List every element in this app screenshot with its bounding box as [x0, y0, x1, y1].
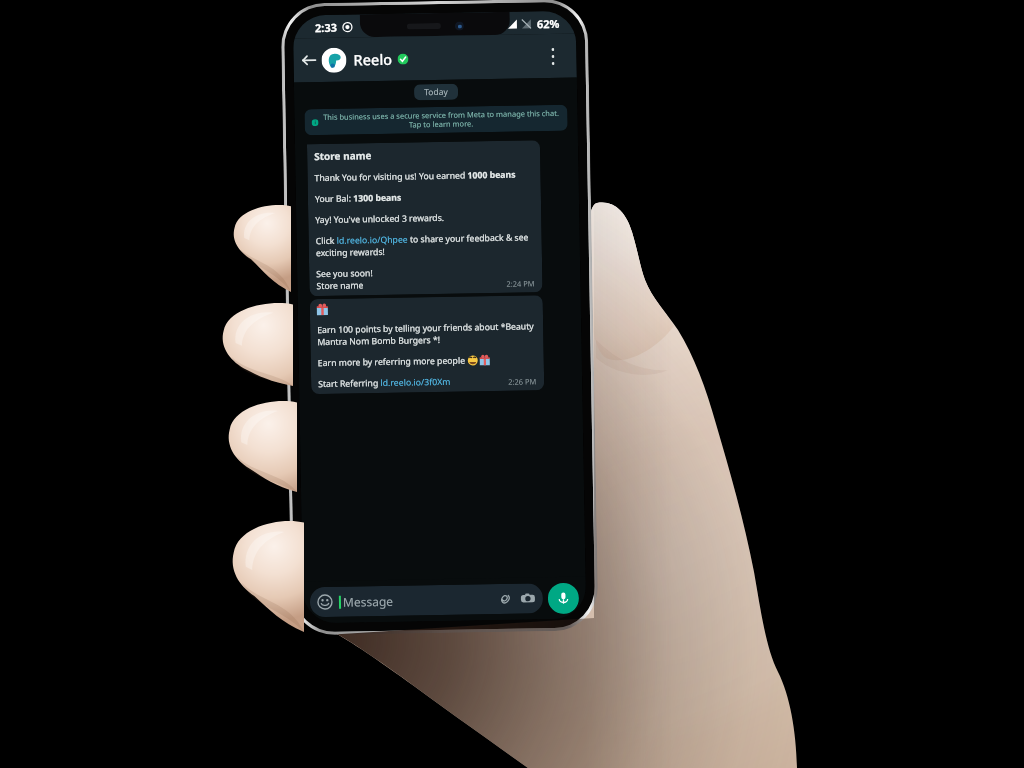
staticText: Start Referring ld.reelo.io/3f0Xm — [318, 376, 451, 390]
button[interactable]: Voice message — [548, 583, 579, 614]
staticText: Store name — [314, 148, 372, 163]
staticText: 2:26 PM — [508, 376, 537, 387]
button[interactable]: Back — [297, 49, 320, 71]
staticText: This business uses a secure service from… — [321, 108, 561, 132]
staticText: Click ld.reelo.io/Qhpee to share your fe… — [316, 231, 535, 259]
staticText: Earn 100 points by telling your friends … — [317, 320, 536, 348]
button[interactable]: Today — [414, 84, 458, 100]
staticText: Yay! You've unlocked 3 rewards. — [315, 212, 444, 226]
button[interactable]: Attach — [498, 592, 512, 606]
staticText: Your Bal: 1300 beans — [315, 192, 402, 205]
button[interactable]: Message — [310, 583, 543, 617]
staticText: See you soon! — [316, 267, 373, 280]
button[interactable]: Earn 100 points by telling your friends … — [310, 295, 544, 394]
staticText: Earn more by referring more people — [318, 354, 468, 369]
staticText: 2:33 — [315, 20, 337, 35]
staticText: Reelo — [353, 49, 393, 69]
button[interactable]: Camera — [521, 591, 535, 606]
staticText: Today — [424, 86, 448, 98]
staticText: 2:24 PM — [506, 278, 535, 289]
staticText: Thank You for visiting us! You earned 10… — [314, 169, 516, 184]
button[interactable]: More options — [540, 44, 566, 69]
button[interactable]: Profile photo — [321, 48, 347, 73]
staticText: Store name — [316, 279, 363, 292]
button[interactable]: Store name — [307, 140, 543, 296]
button[interactable]: i — [304, 105, 568, 135]
staticText: 62% — [537, 16, 560, 31]
staticText: i — [314, 119, 317, 126]
staticText: Message — [343, 593, 394, 610]
